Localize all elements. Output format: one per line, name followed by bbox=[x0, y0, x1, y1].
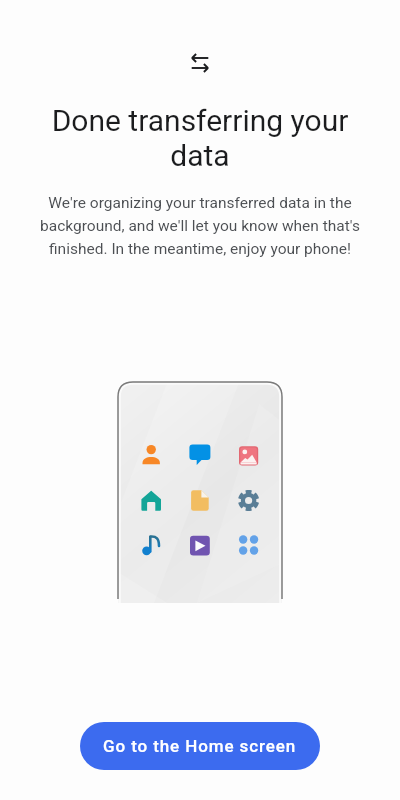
staticText: Go to the Home screen bbox=[103, 736, 297, 756]
button[interactable]: Go to the Home screen bbox=[80, 722, 320, 770]
staticText: We're organizing your transferred data i… bbox=[32, 194, 368, 258]
other: Transfer data bbox=[188, 52, 212, 74]
staticText: Done transferring your data bbox=[24, 103, 376, 173]
